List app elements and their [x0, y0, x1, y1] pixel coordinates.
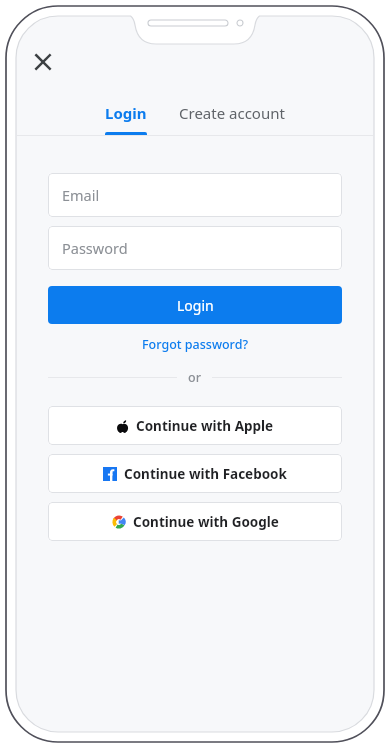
staticText: Login [177, 296, 214, 315]
button[interactable]: Continue with Facebook [48, 454, 342, 493]
button[interactable]: Forgot password? [48, 331, 342, 358]
staticText: Continue with Google [133, 513, 279, 531]
button[interactable]: Password [48, 226, 342, 270]
button[interactable]: Email [48, 173, 342, 217]
staticText: Login [105, 103, 147, 123]
staticText: Create account [179, 103, 285, 123]
staticText: Password [62, 238, 128, 258]
staticText: Forgot password? [142, 336, 248, 353]
button[interactable]: Login [48, 286, 342, 324]
button[interactable]: Close [27, 46, 59, 78]
staticText: Continue with Apple [136, 417, 274, 435]
button[interactable]: Continue with Apple [48, 406, 342, 445]
staticText: or [188, 369, 201, 386]
button[interactable]: Continue with Google [48, 502, 342, 541]
staticText: Continue with Facebook [124, 465, 287, 483]
button[interactable]: Login [101, 99, 151, 135]
button[interactable]: Create account [175, 99, 289, 135]
staticText: Email [62, 185, 100, 205]
